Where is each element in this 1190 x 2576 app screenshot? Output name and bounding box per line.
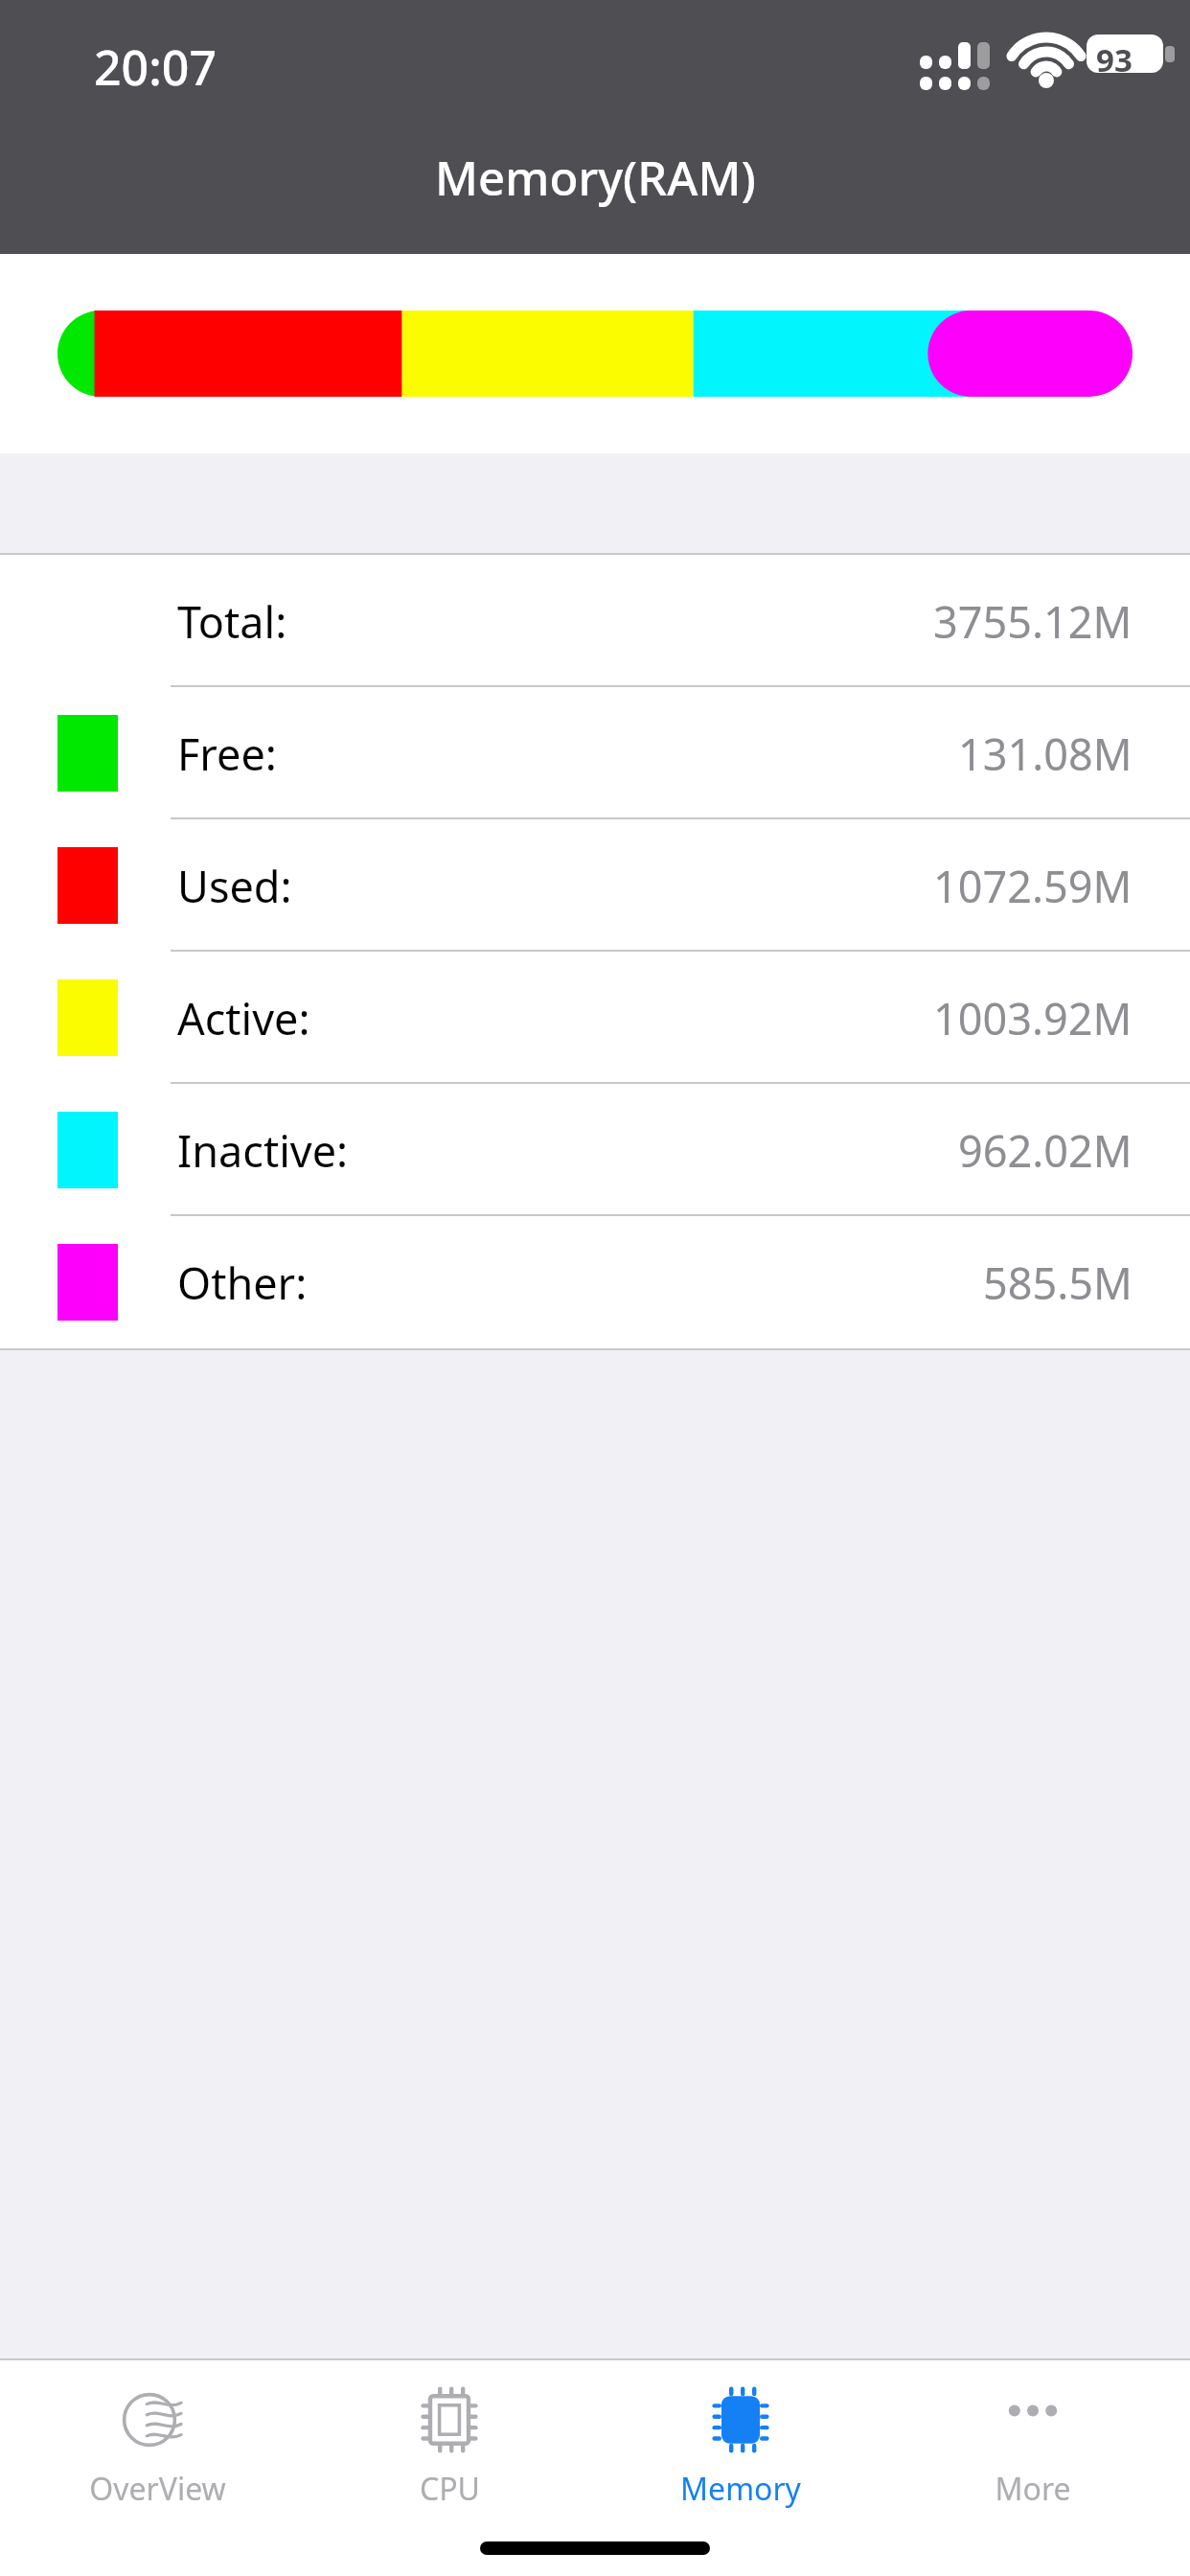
button[interactable]: Active: bbox=[0, 952, 1190, 1084]
button[interactable]: CPU bbox=[315, 2360, 584, 2510]
button[interactable]: Total: bbox=[0, 555, 1190, 687]
other: Memory bbox=[702, 2381, 779, 2458]
staticText: 585.5M bbox=[983, 1253, 1133, 1312]
button[interactable]: Memory bbox=[606, 2360, 875, 2510]
staticText: 962.02M bbox=[958, 1121, 1133, 1180]
staticText: 131.08M bbox=[958, 724, 1133, 783]
button[interactable]: More bbox=[899, 2360, 1167, 2510]
staticText: 1072.59M bbox=[933, 857, 1133, 915]
staticText: OverView bbox=[89, 2468, 226, 2510]
staticText: 20:07 bbox=[94, 34, 217, 100]
staticText: Free: bbox=[177, 724, 277, 783]
staticText: 3755.12M bbox=[933, 592, 1133, 651]
staticText: More bbox=[995, 2468, 1071, 2510]
staticText: 93 bbox=[1096, 38, 1133, 81]
button[interactable]: OverView bbox=[23, 2360, 291, 2510]
staticText: Inactive: bbox=[177, 1121, 349, 1180]
button[interactable]: Inactive: bbox=[0, 1084, 1190, 1216]
staticText: Memory bbox=[680, 2468, 801, 2510]
staticText: CPU bbox=[420, 2468, 480, 2510]
staticText: Memory(RAM) bbox=[435, 146, 756, 210]
staticText: Active: bbox=[177, 989, 310, 1047]
other: More bbox=[995, 2381, 1071, 2458]
button[interactable]: Free: bbox=[0, 687, 1190, 819]
staticText: Other: bbox=[177, 1253, 308, 1312]
other: CPU bbox=[411, 2381, 488, 2458]
staticText: Used: bbox=[177, 857, 292, 915]
staticText: Total: bbox=[177, 592, 287, 651]
button[interactable]: Other: bbox=[0, 1216, 1190, 1348]
other: OverView bbox=[119, 2381, 195, 2458]
button[interactable]: Used: bbox=[0, 819, 1190, 952]
staticText: 1003.92M bbox=[933, 989, 1133, 1047]
